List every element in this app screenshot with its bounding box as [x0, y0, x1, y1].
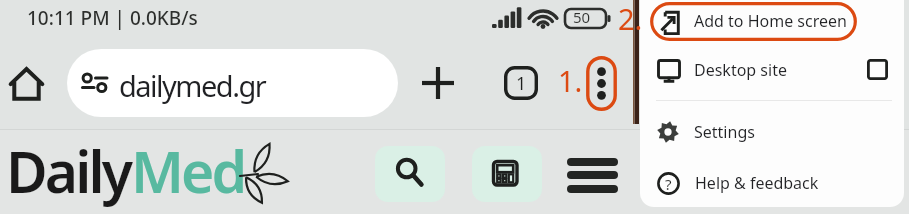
button[interactable]: Add to Home screen	[640, 1, 904, 41]
staticText: Desktop site	[694, 59, 787, 81]
staticText: 2.	[618, 0, 643, 38]
button[interactable]: Settings	[640, 112, 904, 152]
button[interactable]: Home	[4, 61, 48, 105]
button[interactable]: More options	[586, 56, 617, 111]
staticText: 1.	[558, 61, 583, 100]
button[interactable]: ?	[640, 163, 904, 203]
staticText: Help & feedback	[695, 172, 819, 194]
button[interactable]: Tabs	[504, 66, 538, 100]
staticText: Add to Home screen	[694, 10, 847, 32]
button[interactable]: New tab	[418, 63, 458, 103]
staticText: ?	[665, 174, 672, 194]
staticText: dailymed.gr	[119, 66, 266, 105]
staticText: Settings	[694, 121, 755, 143]
staticText: Med	[131, 132, 245, 210]
button[interactable]: dailymed.gr	[67, 49, 398, 117]
button[interactable]: Desktop site	[640, 50, 904, 90]
button[interactable]: Menu	[559, 148, 622, 198]
button[interactable]: Calculator	[472, 146, 542, 202]
staticText: 50	[573, 7, 591, 27]
staticText: Daily	[6, 132, 131, 210]
staticText: 10:11 PM | 0.0KB/s	[27, 5, 198, 31]
staticText: 1	[516, 71, 527, 96]
button[interactable]: Search	[375, 146, 445, 202]
